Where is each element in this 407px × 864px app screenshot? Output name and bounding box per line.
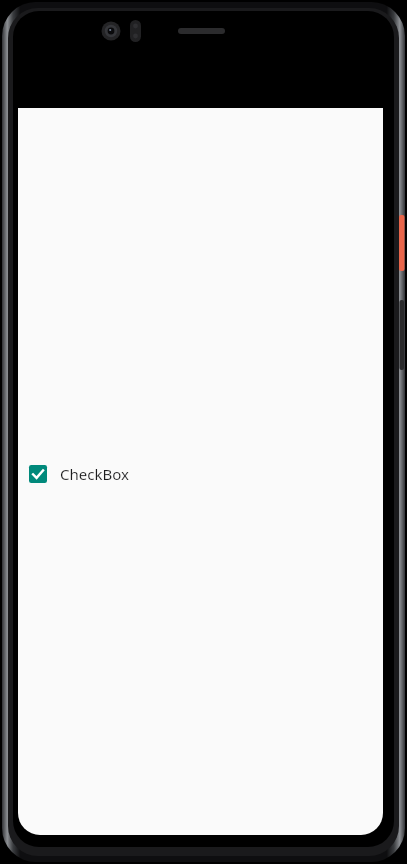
button[interactable]: CheckBox, checked	[22, 458, 54, 490]
staticText: CheckBox	[60, 464, 129, 484]
button[interactable]: CheckBox, checked	[22, 458, 129, 490]
